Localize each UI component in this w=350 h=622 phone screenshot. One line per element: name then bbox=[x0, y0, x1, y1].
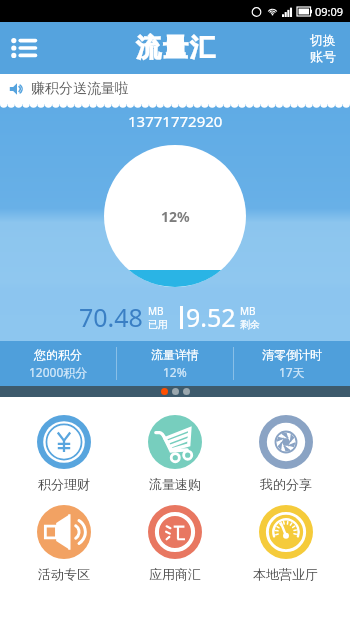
staticText: 12% bbox=[161, 207, 190, 226]
button[interactable]: 您的积分 bbox=[0, 341, 116, 386]
button[interactable]: 赚积分送流量啦 bbox=[9, 80, 129, 98]
staticText: 我的分享 bbox=[260, 476, 312, 492]
button[interactable]: 切换 bbox=[310, 32, 336, 64]
staticText: 剩余 bbox=[240, 318, 260, 331]
staticText: 13771772920 bbox=[128, 111, 223, 131]
staticText: 70.48 bbox=[79, 300, 143, 334]
staticText: 应用商汇 bbox=[149, 566, 201, 582]
button[interactable]: 清零倒计时 bbox=[234, 341, 350, 386]
button[interactable]: 本地营业厅 bbox=[230, 505, 341, 582]
staticText: 17天 bbox=[279, 364, 305, 380]
button[interactable]: 积分理财 bbox=[9, 415, 119, 492]
button[interactable]: 流量详情 bbox=[117, 341, 233, 386]
staticText: 9.52 bbox=[186, 300, 236, 334]
button[interactable]: 我的分享 bbox=[230, 415, 341, 492]
button[interactable]: Menu bbox=[4, 29, 42, 67]
staticText: 流量汇 bbox=[135, 32, 216, 63]
staticText: 本地营业厅 bbox=[253, 566, 318, 582]
staticText: 赚积分送流量啦 bbox=[31, 80, 129, 98]
staticText: 09:09 bbox=[315, 4, 344, 19]
staticText: MB bbox=[148, 304, 164, 318]
button[interactable]: 应用商汇 bbox=[119, 505, 230, 582]
staticText: 清零倒计时 bbox=[262, 347, 322, 362]
button[interactable]: 活动专区 bbox=[9, 505, 119, 582]
staticText: 您的积分 bbox=[34, 347, 82, 362]
staticText: 12000积分 bbox=[29, 364, 88, 380]
staticText: 12% bbox=[163, 364, 187, 380]
staticText: 积分理财 bbox=[38, 476, 90, 492]
staticText: 账号 bbox=[310, 48, 336, 64]
button[interactable]: 流量速购 bbox=[119, 415, 230, 492]
staticText: 活动专区 bbox=[38, 566, 90, 582]
staticText: 流量详情 bbox=[151, 347, 199, 362]
staticText: MB bbox=[240, 304, 256, 318]
staticText: 已用 bbox=[148, 318, 168, 331]
staticText: 流量速购 bbox=[149, 476, 201, 492]
staticText: 切换 bbox=[310, 32, 336, 48]
